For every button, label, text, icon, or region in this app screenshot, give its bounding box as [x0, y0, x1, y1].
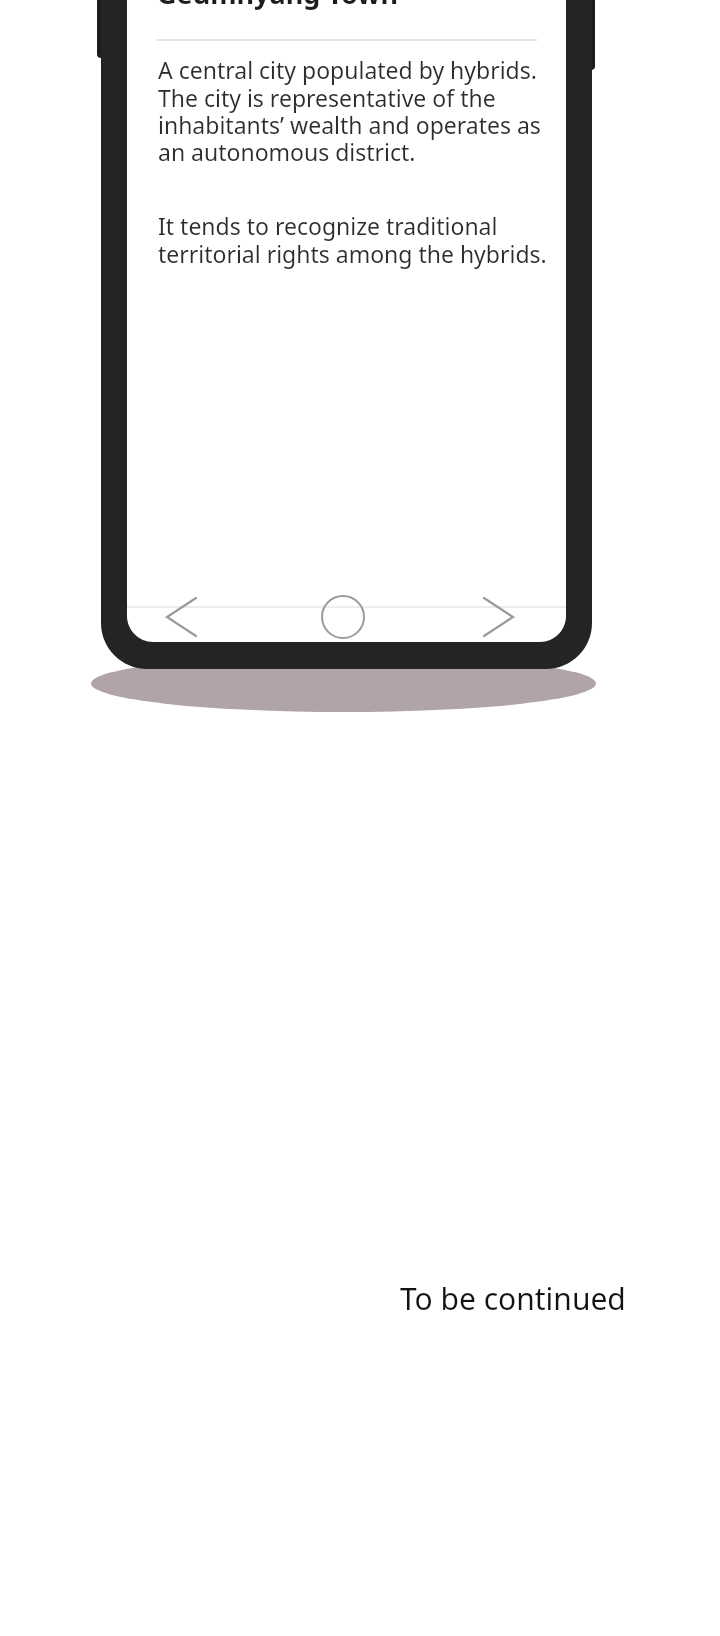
button[interactable]: Back [127, 588, 273, 642]
staticText: Geumhyang Town [157, 0, 399, 12]
staticText: It tends to recognize traditional territ… [158, 210, 552, 269]
button[interactable]: Home [273, 588, 419, 642]
button[interactable]: Forward [419, 588, 566, 642]
staticText: To be continued [400, 1278, 626, 1319]
staticText: A central city populated by hybrids. The… [158, 54, 552, 167]
